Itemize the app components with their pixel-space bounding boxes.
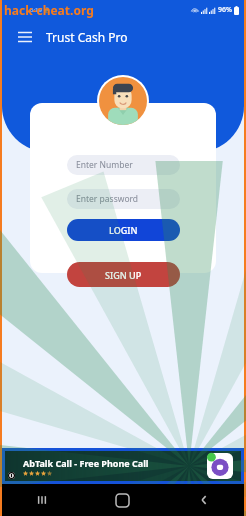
staticText: SIGN UP <box>105 269 142 281</box>
button[interactable]: AbTalk Call advertisement <box>5 451 241 481</box>
button[interactable]: Enter Number <box>67 155 180 175</box>
staticText: Enter Number <box>76 159 133 171</box>
staticText: Trust Cash Pro <box>46 29 128 45</box>
button[interactable]: Back <box>163 484 244 516</box>
staticText: 96% <box>218 5 232 15</box>
button[interactable]: Enter password <box>67 189 180 209</box>
button[interactable]: Home <box>82 484 163 516</box>
staticText: LOGIN <box>109 224 138 236</box>
staticText: AbTalk Call - Free Phone Call <box>23 457 149 469</box>
staticText: Enter password <box>76 193 139 205</box>
staticText: hack-cheat.org <box>4 2 94 18</box>
button[interactable]: LOGIN <box>67 219 180 241</box>
button[interactable]: Open navigation menu <box>12 24 38 50</box>
button[interactable]: SIGN UP <box>67 262 180 287</box>
button[interactable]: Recent apps <box>2 484 82 516</box>
staticText: 6:19 🔒 <box>30 6 51 14</box>
